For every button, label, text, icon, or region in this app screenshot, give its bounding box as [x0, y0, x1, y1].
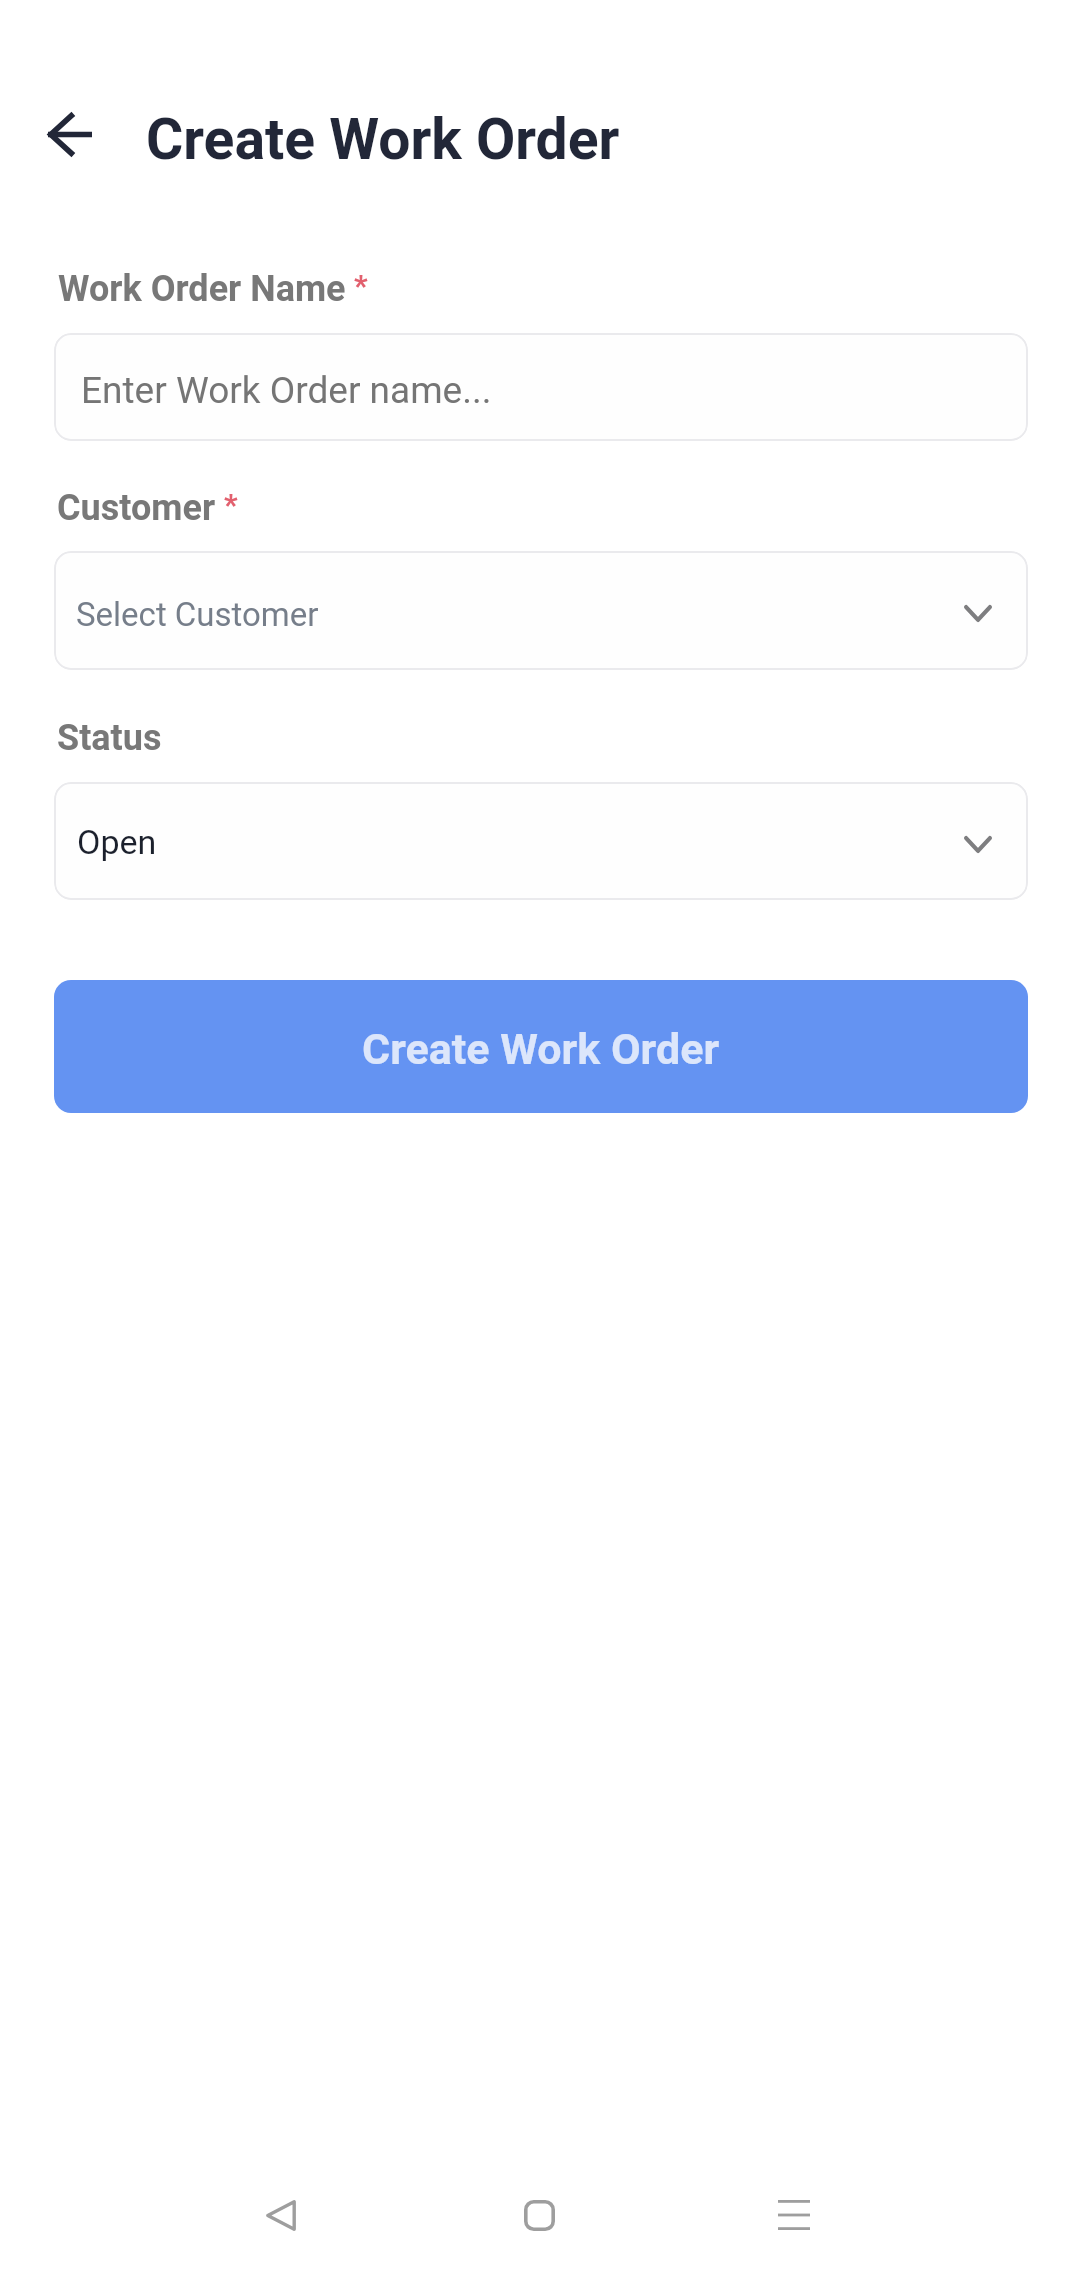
- button[interactable]: Recent apps: [754, 2175, 834, 2255]
- staticText: Enter Work Order name...: [81, 369, 492, 412]
- staticText: Create Work Order: [146, 106, 620, 173]
- staticText: Status: [57, 717, 162, 759]
- staticText: *: [354, 268, 368, 303]
- button[interactable]: Back: [42, 106, 98, 162]
- staticText: Customer: [57, 487, 216, 529]
- button[interactable]: Create Work Order: [54, 980, 1028, 1113]
- staticText: Create Work Order: [362, 1024, 720, 1074]
- button[interactable]: Home: [499, 2175, 579, 2255]
- staticText: *: [224, 487, 238, 522]
- button[interactable]: Back: [241, 2175, 321, 2255]
- staticText: Work Order Name: [58, 268, 346, 310]
- button[interactable]: Enter Work Order name...: [54, 333, 1028, 441]
- button[interactable]: Open: [54, 782, 1028, 900]
- button[interactable]: Select Customer: [54, 551, 1028, 670]
- staticText: Open: [77, 822, 157, 862]
- staticText: Select Customer: [76, 595, 319, 634]
